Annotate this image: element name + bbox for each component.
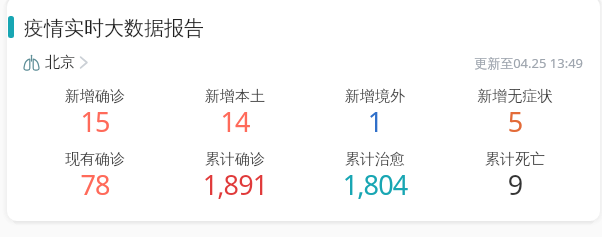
button[interactable]: 新增境外 xyxy=(305,87,445,141)
staticText: 新增境外 xyxy=(305,87,445,106)
staticText: 新增确诊 xyxy=(25,87,165,106)
button[interactable]: Select region xyxy=(23,53,88,72)
staticText: 1,891 xyxy=(165,166,305,203)
button[interactable]: 累计死亡 xyxy=(445,150,585,204)
button[interactable]: 新增本土 xyxy=(165,87,305,141)
staticText: 新增无症状 xyxy=(445,87,585,106)
button[interactable]: 累计治愈 xyxy=(305,150,445,204)
staticText: 疫情实时大数据报告 xyxy=(24,16,204,41)
button[interactable]: 新增确诊 xyxy=(25,87,165,141)
staticText: 15 xyxy=(25,103,165,140)
staticText: 9 xyxy=(445,166,585,203)
staticText: 累计确诊 xyxy=(165,150,305,169)
staticText: 累计死亡 xyxy=(445,150,585,169)
button[interactable]: 现有确诊 xyxy=(25,150,165,204)
staticText: 14 xyxy=(165,103,305,140)
button[interactable]: 累计确诊 xyxy=(165,150,305,204)
staticText: 78 xyxy=(25,166,165,203)
staticText: 更新至04.25 13:49 xyxy=(7,54,583,72)
staticText: 5 xyxy=(445,103,585,140)
staticText: 现有确诊 xyxy=(25,150,165,169)
staticText: 1 xyxy=(305,103,445,140)
other: Select region xyxy=(23,55,40,70)
staticText: 北京 xyxy=(45,53,75,72)
staticText: 1,804 xyxy=(305,166,445,203)
staticText: 新增本土 xyxy=(165,87,305,106)
staticText: 累计治愈 xyxy=(305,150,445,169)
button[interactable]: 新增无症状 xyxy=(445,87,585,141)
